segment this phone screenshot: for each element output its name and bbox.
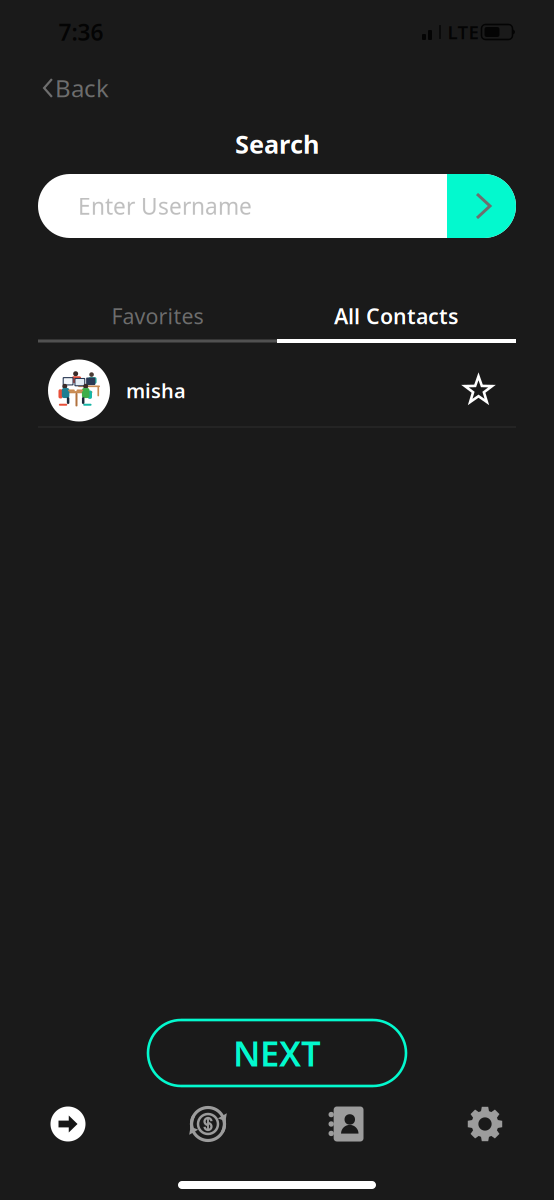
button[interactable]: Favorites xyxy=(38,293,277,339)
staticText: misha xyxy=(126,377,186,404)
staticText: Favorites xyxy=(111,302,203,330)
staticText: NEXT xyxy=(233,1030,321,1076)
staticText: Search xyxy=(235,127,319,161)
staticText: 7:36 xyxy=(58,17,103,47)
button[interactable]: All Contacts xyxy=(277,293,516,339)
button[interactable]: Contacts xyxy=(286,1093,406,1155)
button[interactable]: Back xyxy=(33,62,119,114)
button[interactable]: misha xyxy=(38,354,516,426)
staticText: Enter Username xyxy=(78,191,252,221)
staticText: Back xyxy=(55,72,109,104)
button[interactable]: Settings xyxy=(425,1093,545,1155)
button[interactable]: NEXT xyxy=(148,1020,406,1086)
staticText: LTE xyxy=(447,20,478,44)
button[interactable]: Send xyxy=(8,1093,128,1155)
button[interactable]: Transactions xyxy=(148,1093,268,1155)
staticText: All Contacts xyxy=(334,302,459,330)
button[interactable]: Submit search xyxy=(447,174,516,238)
